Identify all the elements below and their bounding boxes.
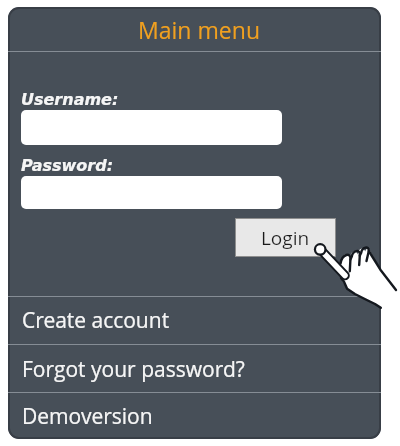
button[interactable]: Main menu xyxy=(8,7,381,52)
staticText: Main menu xyxy=(138,14,260,45)
staticText: Create account xyxy=(22,306,170,335)
staticText: Username: xyxy=(21,90,119,109)
staticText: Forgot your password? xyxy=(22,355,245,384)
staticText: Login xyxy=(261,225,310,251)
button[interactable]: Create account xyxy=(8,297,381,344)
staticText: Password: xyxy=(21,156,114,175)
button[interactable]: Login xyxy=(235,218,336,257)
button[interactable] xyxy=(21,176,282,209)
button[interactable] xyxy=(21,110,282,145)
button[interactable]: Demoversion xyxy=(8,393,381,439)
other: Pointer xyxy=(310,238,400,318)
staticText: Demoversion xyxy=(22,402,153,431)
button[interactable]: Forgot your password? xyxy=(8,345,381,393)
